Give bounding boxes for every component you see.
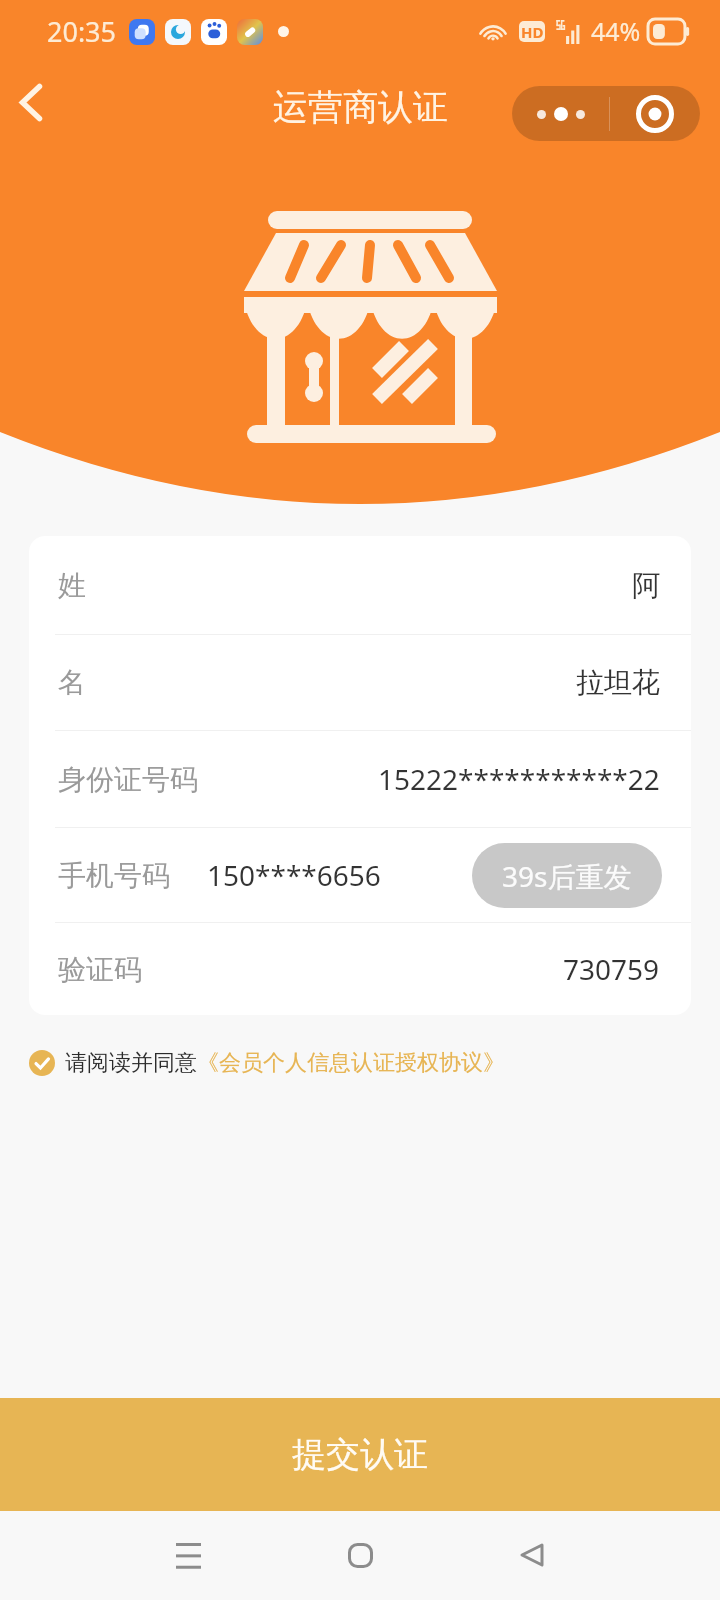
staticText: HD [521, 22, 544, 42]
button[interactable]: Recent apps [148, 1523, 228, 1587]
staticText: 运营商认证 [273, 85, 448, 129]
button[interactable]: 验证码 [58, 923, 660, 1015]
staticText: 44% [591, 14, 641, 48]
staticText: 请阅读并同意 [65, 1049, 197, 1077]
button[interactable]: Close [610, 86, 700, 141]
button[interactable]: 名 [58, 635, 660, 730]
staticText: 拉坦花 [576, 665, 660, 700]
staticText: 名 [58, 665, 86, 700]
button[interactable]: More [512, 86, 609, 141]
staticText: 提交认证 [292, 1433, 428, 1476]
staticText: 验证码 [58, 952, 142, 987]
staticText: 手机号码 [58, 858, 170, 893]
staticText: 15222***********22 [378, 760, 660, 798]
button[interactable]: 身份证号码 [58, 731, 660, 827]
button[interactable]: 姓 [58, 536, 660, 634]
staticText: 20:35 [47, 13, 117, 50]
staticText: 39s后重发 [502, 857, 632, 895]
staticText: 姓 [58, 568, 86, 603]
button[interactable]: 39s后重发 [472, 843, 662, 908]
button[interactable]: Back [0, 62, 71, 142]
staticText: 《会员个人信息认证授权协议》 [197, 1049, 505, 1077]
button[interactable]: 请阅读并同意 [29, 1040, 505, 1086]
button[interactable]: Home [320, 1523, 400, 1587]
staticText: 阿 [632, 568, 660, 603]
button[interactable]: Back [492, 1523, 572, 1587]
staticText: 730759 [563, 950, 660, 988]
button[interactable]: 提交认证 [0, 1398, 720, 1511]
staticText: 身份证号码 [58, 762, 198, 797]
staticText: 150****6656 [207, 856, 381, 894]
